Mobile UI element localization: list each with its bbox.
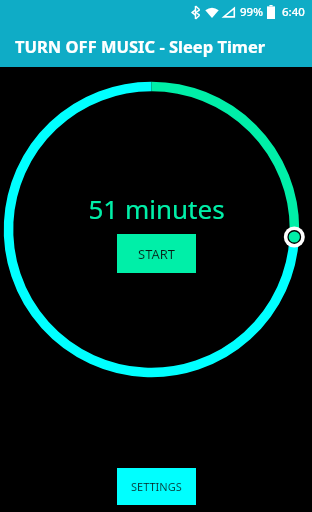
staticText: 6:40 [282, 4, 305, 20]
other: Wi-Fi connected [205, 7, 219, 18]
button[interactable]: SETTINGS [117, 468, 196, 505]
staticText: START [138, 245, 176, 263]
staticText: TURN OFF MUSIC - Sleep Timer [15, 35, 266, 57]
staticText: 51 minutes [88, 191, 225, 226]
staticText: 99% [240, 4, 263, 20]
staticText: SETTINGS [131, 479, 182, 494]
other: Battery 99 percent [267, 5, 275, 19]
other: No signal [223, 7, 235, 18]
button[interactable]: START [117, 234, 196, 273]
other: Bluetooth on [191, 6, 200, 19]
